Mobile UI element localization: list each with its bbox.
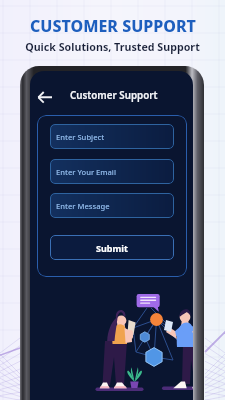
staticText: Enter Message: [56, 201, 110, 211]
staticText: Submit: [96, 242, 128, 254]
button[interactable]: Enter Your Email: [50, 159, 174, 184]
button[interactable]: Back: [34, 86, 56, 108]
staticText: CUSTOMER SUPPORT: [30, 15, 196, 37]
staticText: Enter Subject: [56, 132, 105, 142]
button[interactable]: Enter Subject: [50, 124, 174, 149]
staticText: Customer Support: [70, 89, 158, 102]
staticText: Enter Your Email: [56, 167, 116, 177]
staticText: Quick Solutions, Trusted Support: [25, 40, 200, 55]
button[interactable]: Submit: [50, 235, 174, 260]
button[interactable]: Enter Message: [50, 193, 174, 218]
